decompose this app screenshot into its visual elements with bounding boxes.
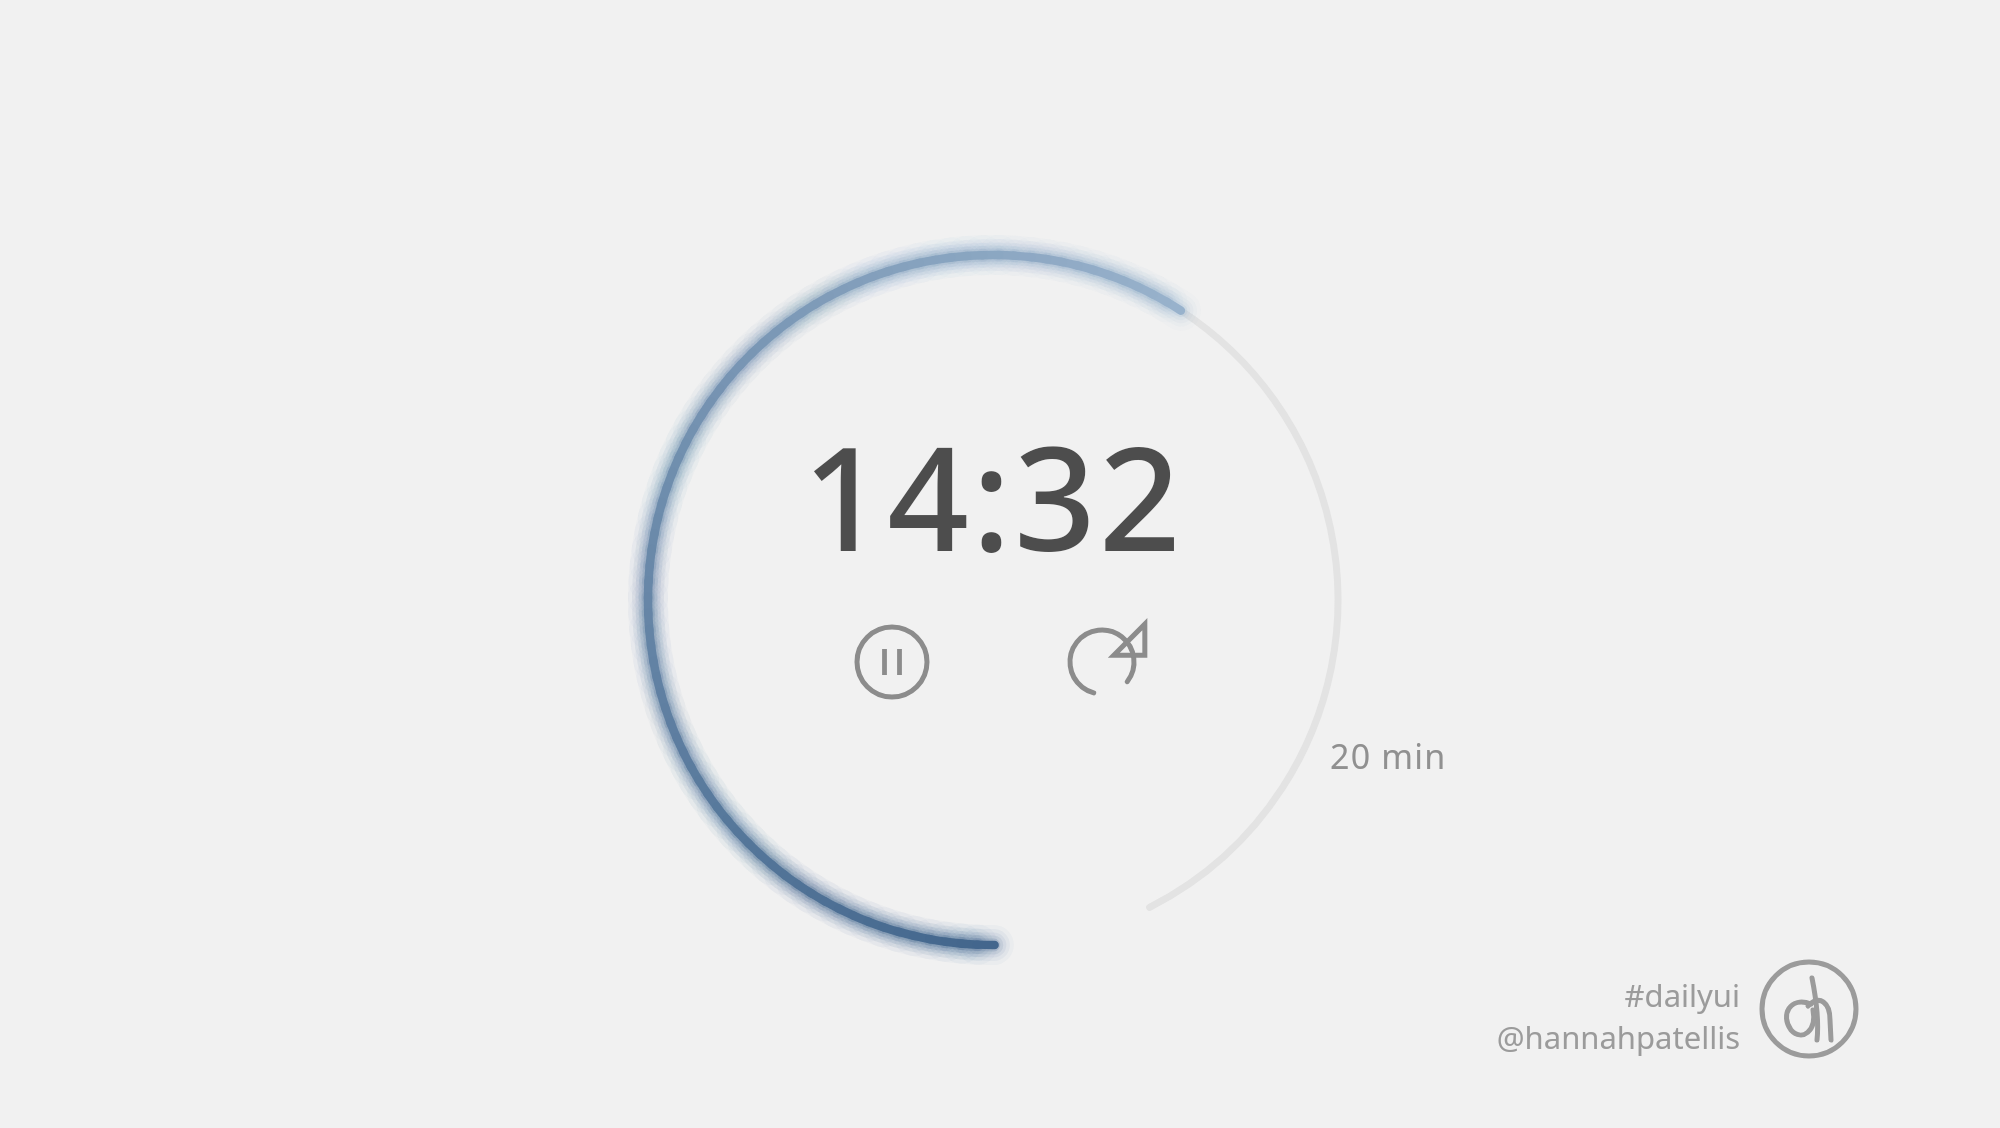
staticText: @hannahpatellis — [1440, 1016, 1740, 1058]
button[interactable]: Restart — [1055, 615, 1149, 709]
staticText: 20 min — [1330, 733, 1447, 779]
button[interactable]: Pause — [845, 615, 939, 709]
staticText: 14:32 — [703, 398, 1283, 568]
other: Logo — [1756, 956, 1862, 1062]
staticText: #dailyui — [1520, 974, 1740, 1016]
